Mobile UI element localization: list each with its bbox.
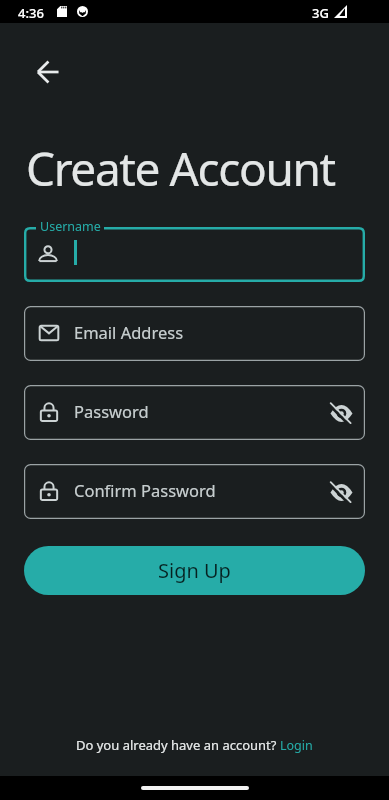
button[interactable]: Sign Up [24, 546, 365, 595]
staticText: Email Address [74, 321, 184, 343]
staticText: Do you already have an account? [76, 736, 280, 754]
button[interactable]: Password [24, 385, 365, 440]
button[interactable]: Toggle password visibility [328, 479, 354, 505]
button[interactable]: Username field [24, 227, 365, 282]
staticText: Username [40, 218, 101, 235]
button[interactable]: Email Address [24, 306, 365, 361]
staticText: Confirm Password [74, 479, 216, 501]
button[interactable]: Login [280, 737, 313, 754]
button[interactable]: Toggle password visibility [328, 400, 354, 426]
staticText: Login [280, 737, 313, 754]
staticText: Password [74, 400, 149, 422]
staticText: 3G [312, 4, 329, 22]
staticText: Create Account [26, 137, 335, 200]
button[interactable]: Back [26, 50, 70, 94]
staticText: 4:36 [18, 4, 44, 22]
staticText: Sign Up [158, 557, 231, 584]
button[interactable]: Confirm Password [24, 464, 365, 519]
